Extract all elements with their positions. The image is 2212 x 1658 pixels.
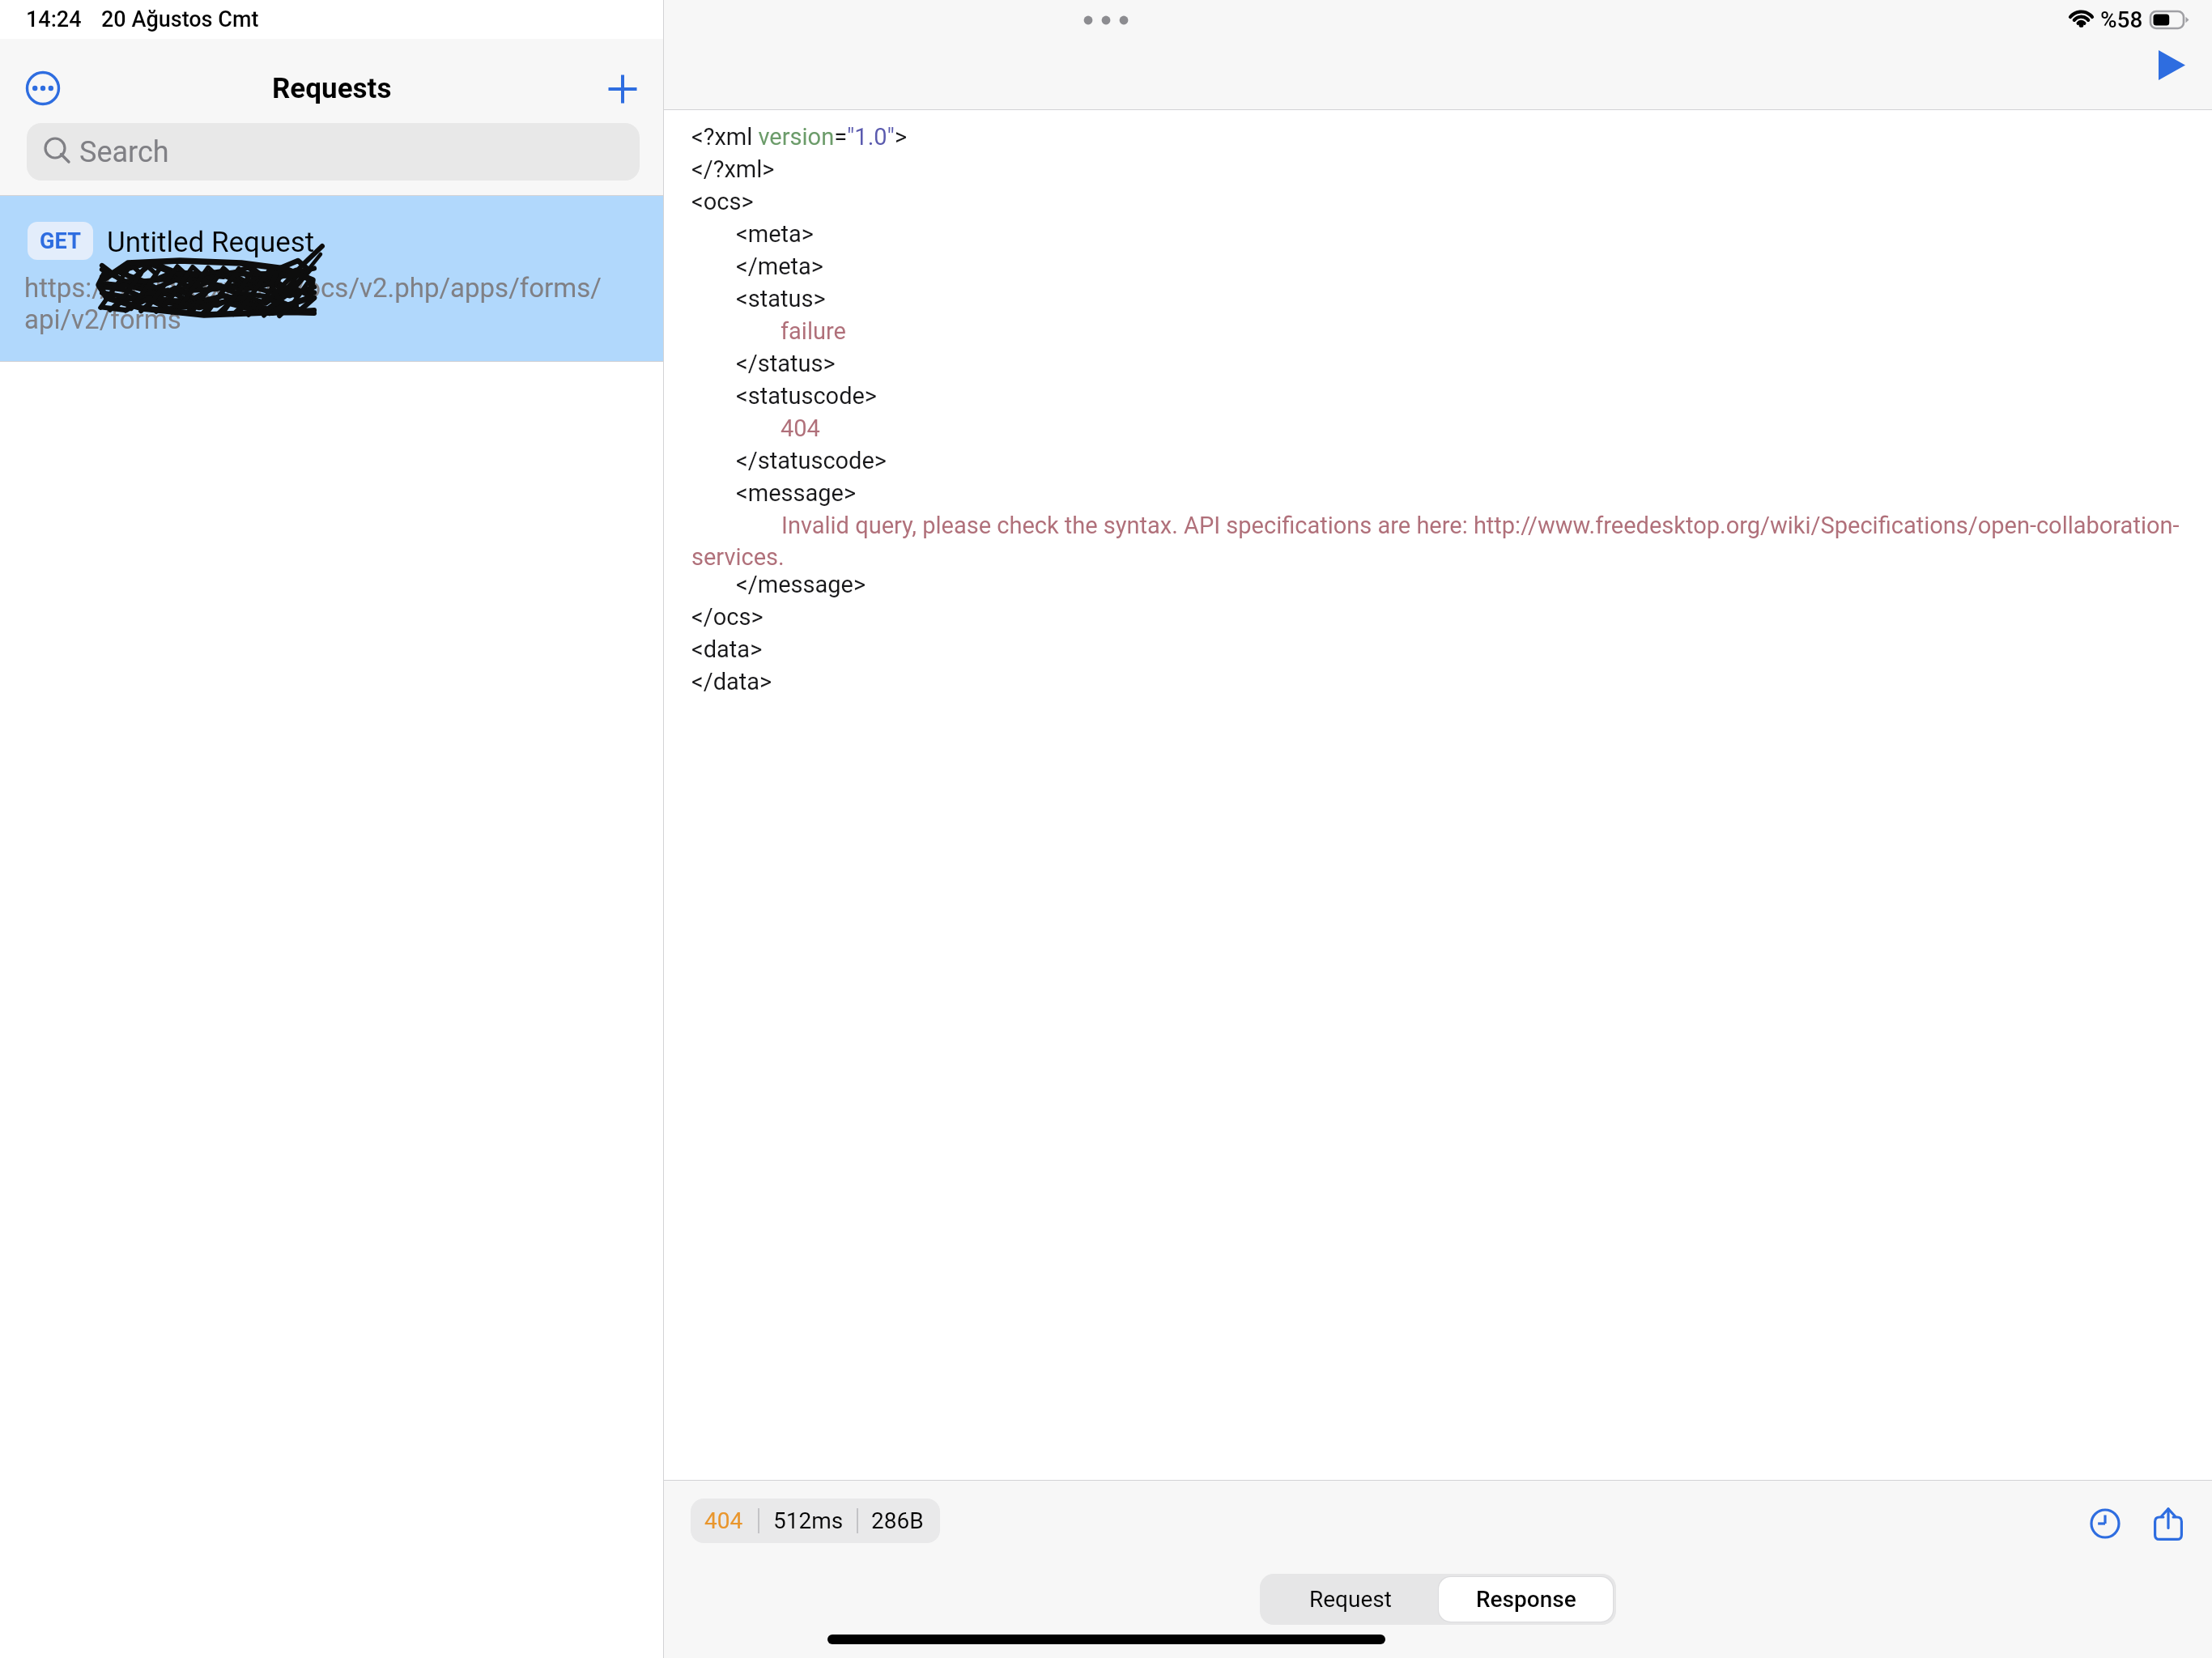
staticText: 286B [871,1507,924,1534]
button[interactable]: Send request [2131,37,2212,92]
staticText: Request [1309,1586,1392,1613]
staticText: <ocs> [691,188,754,215]
staticText: <status> [736,285,826,312]
staticText: 14:24 [26,6,82,32]
staticText: <statuscode> [736,382,878,410]
staticText: </status> [736,350,836,377]
staticText: Invalid query, please check the syntax. … [691,512,2193,571]
staticText: 20 Ağustos Cmt [101,6,259,32]
staticText: failure [781,317,846,345]
button[interactable]: Request [1262,1576,1438,1622]
button[interactable]: History [2078,1496,2133,1551]
staticText: Untitled Request [107,226,315,259]
staticText: </meta> [736,253,823,280]
button[interactable]: Share [2141,1496,2196,1551]
staticText: Search [79,135,169,169]
button[interactable]: Add request [589,55,657,123]
staticText: </message> [736,571,866,598]
staticText: </?xml> [691,155,775,183]
staticText: </ocs> [691,603,764,631]
staticText: <meta> [736,220,814,248]
button[interactable]: More options [9,54,77,122]
staticText: 404 [781,414,820,442]
button[interactable]: Search requests [27,123,640,181]
staticText: <message> [736,479,857,507]
staticText: Response [1476,1586,1576,1613]
staticText: </data> [691,668,772,695]
staticText: Requests [272,72,392,105]
staticText: <data> [691,636,763,663]
staticText: https://cloud.xxxxx.net/ocs/v2.php/apps/… [24,272,611,335]
staticText: GET [40,228,82,254]
staticText: %58 [2100,6,2143,33]
button[interactable]: Response [1439,1577,1613,1622]
staticText: </statuscode> [736,447,887,474]
staticText: <?xml version="1.0"> [691,123,908,151]
staticText: 404 [704,1507,743,1534]
staticText: 512ms [773,1507,844,1534]
button[interactable]: GET [0,196,663,361]
